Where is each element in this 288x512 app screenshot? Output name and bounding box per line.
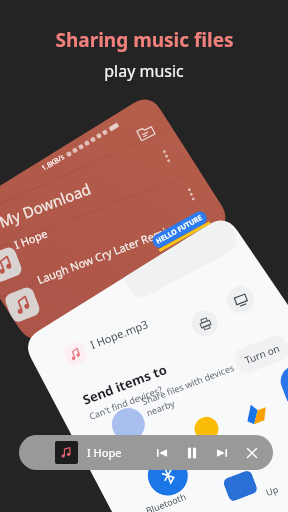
button[interactable]: Pause bbox=[180, 441, 203, 464]
staticText: s bbox=[258, 438, 267, 451]
staticText: I Hope.mp3 bbox=[88, 316, 150, 352]
staticText: Can't find devices? bbox=[87, 383, 164, 422]
staticText: I Hope bbox=[12, 225, 50, 252]
button[interactable]: Song artwork bbox=[3, 285, 42, 324]
staticText: rive bbox=[225, 429, 244, 446]
staticText: My Download bbox=[0, 178, 94, 232]
staticText: Bluetooth bbox=[144, 490, 187, 512]
staticText: play music bbox=[104, 60, 184, 82]
staticText: Share files with devices nearby bbox=[140, 361, 240, 418]
button[interactable]: Song artwork bbox=[0, 245, 24, 284]
button[interactable]: Next bbox=[210, 441, 233, 464]
staticText: Up bbox=[264, 482, 280, 498]
button[interactable]: Previous bbox=[150, 441, 173, 464]
button[interactable]: Device bbox=[107, 403, 150, 446]
staticText: 1.8KB/s bbox=[40, 152, 67, 173]
button[interactable]: Folder bbox=[133, 119, 159, 145]
staticText: Laugh Now Cry Later Remix bbox=[35, 222, 174, 287]
staticText: I Hope bbox=[87, 445, 122, 460]
staticText: HELLO FUTURE bbox=[154, 213, 205, 247]
button[interactable]: Turn on bbox=[231, 332, 288, 376]
button[interactable]: Close bbox=[240, 441, 263, 464]
button[interactable]: Bluetooth bbox=[142, 450, 194, 501]
staticText: Send items to bbox=[80, 360, 169, 409]
staticText: Sharing music files bbox=[55, 27, 234, 53]
button[interactable]: Cast bbox=[223, 282, 258, 317]
staticText: Turn on bbox=[242, 341, 282, 367]
button[interactable]: Print bbox=[188, 307, 222, 340]
